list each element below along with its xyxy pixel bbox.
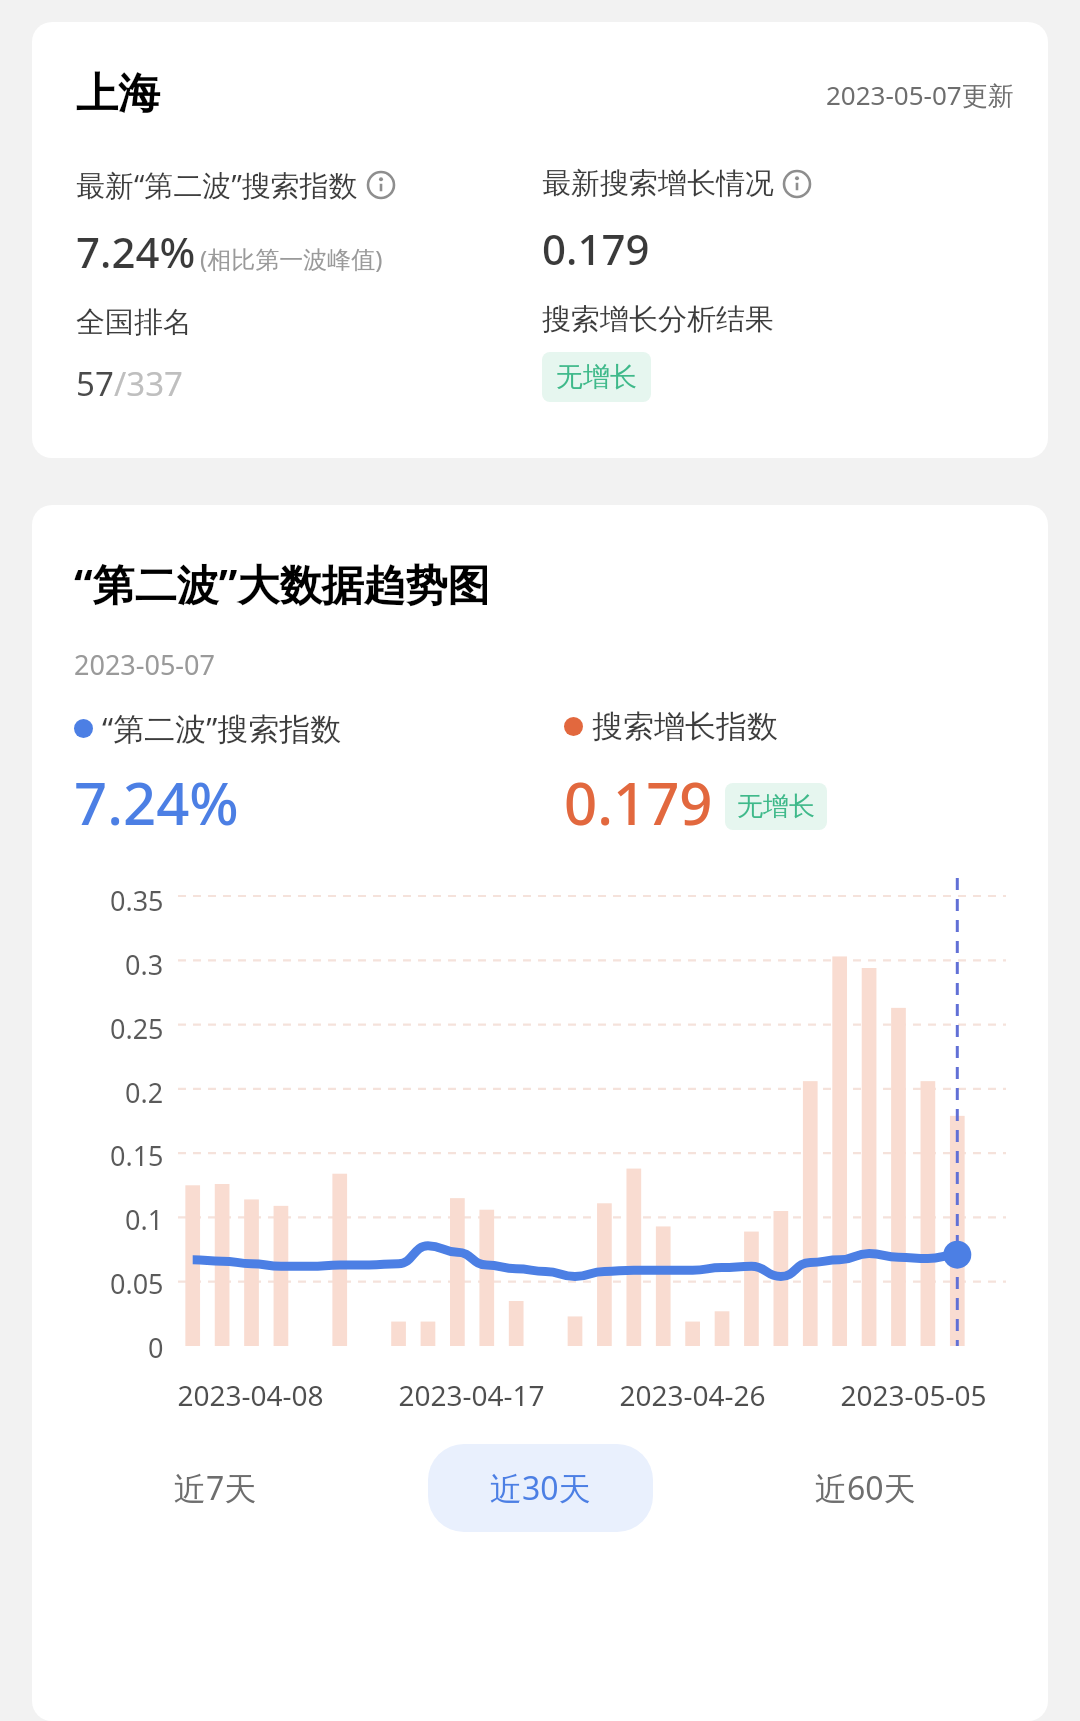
staticText: 2023-04-26 (582, 1376, 803, 1414)
staticText: 0.25 (110, 1010, 164, 1047)
button[interactable]: 近60天 (753, 1444, 978, 1532)
button[interactable]: 说明 (366, 170, 396, 200)
staticText: 近7天 (174, 1466, 257, 1510)
staticText: 0.1 (125, 1201, 164, 1238)
staticText: 0.2 (125, 1074, 164, 1111)
button[interactable]: 上海 (32, 22, 1048, 458)
button[interactable]: 近7天 (112, 1444, 319, 1532)
staticText: (相比第一波峰值) (200, 242, 383, 275)
staticText: 0.05 (110, 1265, 164, 1302)
staticText: 最新搜索增长情况 (542, 165, 774, 202)
staticText: 无增长 (556, 360, 637, 394)
staticText: 最新“第二波”搜索指数 (76, 165, 358, 205)
staticText: “第二波”搜索指数 (102, 707, 342, 749)
staticText: 近60天 (815, 1466, 916, 1510)
button[interactable]: 说明 (782, 169, 812, 199)
staticText: 2023-04-17 (361, 1376, 582, 1414)
staticText: 0 (148, 1329, 164, 1366)
staticText: 0.179 (564, 763, 713, 842)
staticText: /337 (114, 361, 183, 406)
staticText: 7.24% (74, 763, 239, 842)
staticText: 2023-04-08 (140, 1376, 361, 1414)
staticText: 2023-05-05 (803, 1376, 1024, 1414)
staticText: 0.15 (110, 1137, 164, 1174)
staticText: 全国排名 (76, 304, 192, 341)
staticText: 2023-05-07 (74, 646, 215, 683)
staticText: 2023-05-07更新 (826, 77, 1014, 113)
staticText: 近30天 (490, 1466, 591, 1510)
staticText: 7.24% (76, 223, 196, 280)
button[interactable]: 近30天 (428, 1444, 653, 1532)
staticText: 0.179 (542, 220, 650, 277)
staticText: 无增长 (737, 790, 815, 823)
staticText: 57 (76, 361, 114, 406)
staticText: 上海 (76, 68, 160, 121)
staticText: 0.3 (125, 946, 164, 983)
button[interactable]: 无增长 (542, 352, 651, 402)
staticText: 搜索增长分析结果 (542, 301, 774, 338)
staticText: 0.35 (110, 882, 164, 919)
staticText: “第二波”大数据趋势图 (74, 555, 490, 612)
staticText: 搜索增长指数 (592, 707, 778, 746)
